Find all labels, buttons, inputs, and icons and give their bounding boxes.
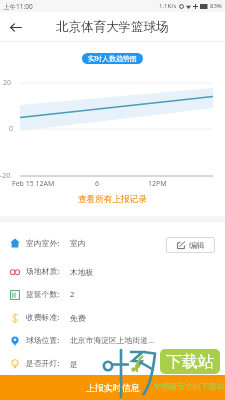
staticText: 查看所有上报记录 bbox=[78, 194, 147, 205]
staticText: 免费 bbox=[70, 313, 86, 323]
staticText: 20 bbox=[3, 78, 12, 88]
staticText: 实时人数趋势图 bbox=[88, 54, 137, 63]
staticText: 球场位置: bbox=[26, 335, 60, 346]
button[interactable]: 查看所有上报记录 bbox=[72, 193, 153, 206]
button[interactable]: 场地材质: bbox=[0, 260, 225, 283]
staticText: 编辑 bbox=[189, 240, 205, 250]
staticText: 北京体育大学篮球场 bbox=[56, 19, 169, 35]
staticText: 是 bbox=[70, 359, 78, 369]
staticText: 上午11:00 bbox=[3, 2, 33, 11]
staticText: 场地材质: bbox=[26, 266, 60, 277]
button[interactable]: 篮筐个数: bbox=[0, 283, 225, 306]
staticText: 83% bbox=[210, 2, 222, 10]
button[interactable]: Back bbox=[4, 16, 26, 38]
staticText: 2 bbox=[70, 289, 75, 300]
staticText: Feb 15 12AM bbox=[12, 179, 55, 189]
button[interactable]: 收费标准: bbox=[0, 306, 225, 329]
staticText: 0 bbox=[9, 124, 14, 134]
staticText: 上报实时信息 bbox=[86, 382, 140, 393]
staticText: 中国最安全的下载站 bbox=[154, 381, 225, 391]
staticText: 6 bbox=[95, 179, 100, 189]
staticText: 篮筐个数: bbox=[26, 289, 60, 300]
button[interactable]: 是否开灯: bbox=[0, 352, 225, 375]
button[interactable]: 实时人数趋势图 bbox=[82, 53, 143, 64]
staticText: 12PM bbox=[148, 179, 167, 189]
staticText: 收费标准: bbox=[26, 312, 60, 323]
button[interactable]: 编辑 bbox=[166, 237, 215, 253]
staticText: -20 bbox=[0, 171, 11, 181]
button[interactable]: 上报实时信息 bbox=[0, 375, 225, 400]
button[interactable]: 球场位置: bbox=[0, 329, 225, 352]
staticText: 室内室外: bbox=[26, 238, 60, 249]
staticText: 木地板 bbox=[70, 267, 94, 277]
staticText: 1.1K/s bbox=[159, 2, 177, 10]
staticText: 室内 bbox=[70, 238, 86, 248]
staticText: 北京市海淀区上地街道… bbox=[70, 335, 155, 346]
staticText: 下载站 bbox=[166, 352, 214, 372]
staticText: 是否开灯: bbox=[26, 358, 60, 369]
